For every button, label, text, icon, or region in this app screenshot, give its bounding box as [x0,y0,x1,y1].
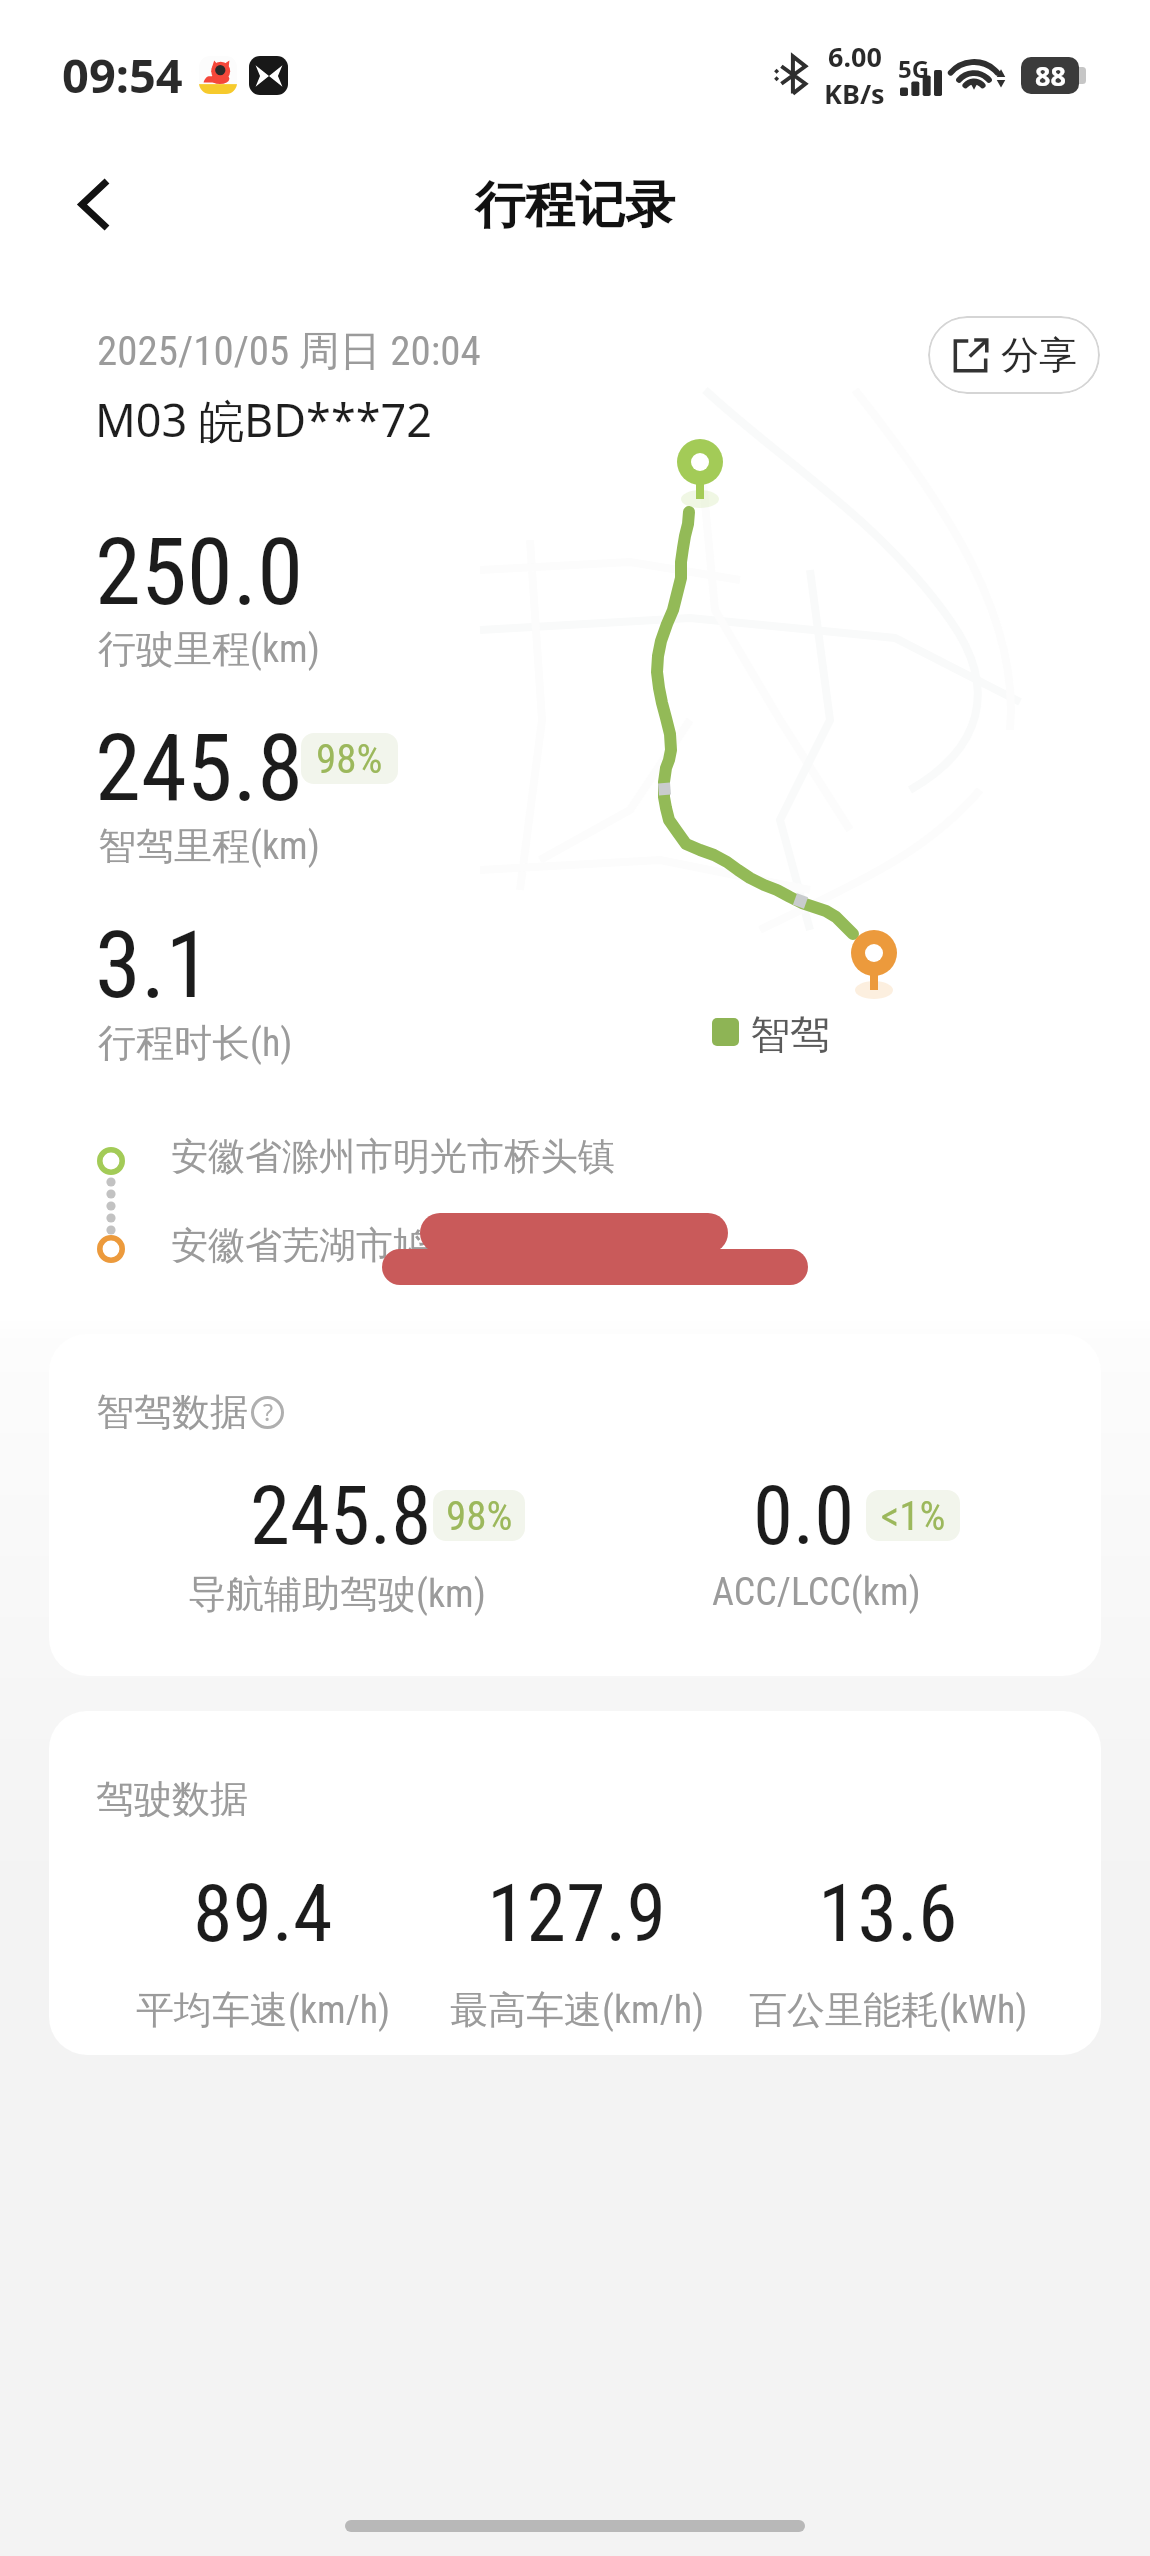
staticText: 百公里能耗(kWh) [749,1986,1028,2034]
staticText: 智驾数据 [96,1388,248,1436]
staticText: 245.8 [250,1469,432,1564]
staticText: 09:54 [62,43,183,107]
staticText: ACC/LCC(km) [712,1570,921,1615]
staticText: 250.0 [95,518,304,627]
staticText: 98% [446,1492,513,1540]
button[interactable]: 安徽省滁州市明光市桥头镇 [90,1125,650,1191]
staticText: 平均车速(km/h) [136,1986,391,2034]
staticText: <1% [881,1492,946,1540]
staticText: 分享 [1001,331,1077,379]
staticText: 智驾里程(km) [98,822,320,870]
staticText: 最高车速(km/h) [450,1986,705,2034]
button[interactable]: 智驾数据 [49,1334,1101,1676]
staticText: 3.1 [95,911,212,1020]
staticText: 2025/10/05 周日 20:04 [97,326,481,378]
staticText: 88 [1035,57,1066,94]
staticText: 智驾 [750,1009,830,1059]
button[interactable]: Back [45,155,143,253]
staticText: 127.9 [487,1867,667,1961]
button[interactable]: Help about assisted driving data [251,1396,284,1429]
staticText: ? [263,1396,273,1427]
staticText: 安徽省滁州市明光市桥头镇 [171,1133,615,1180]
staticText: 安徽省芜湖市鸠江区万达广场 [171,1222,652,1269]
button[interactable]: 安徽省芜湖市鸠江区万达广场 [90,1214,690,1280]
staticText: KB/s [824,75,885,112]
staticText: 驾驶数据 [96,1775,248,1823]
staticText: 0.0 [753,1469,855,1564]
staticText: 导航辅助驾驶(km) [188,1570,486,1618]
button[interactable]: 分享 [928,316,1100,394]
staticText: 6.00 [828,38,882,75]
staticText: 98% [316,735,383,783]
staticText: 13.6 [818,1867,958,1961]
staticText: M03 皖BD***72 [95,389,432,450]
staticText: 5G [898,52,930,85]
staticText: 行程记录 [475,174,675,237]
staticText: 89.4 [193,1867,333,1961]
staticText: 行程时长(h) [98,1019,293,1067]
button[interactable]: 驾驶数据 [49,1711,1101,2055]
staticText: 245.8 [95,714,304,823]
staticText: 行驶里程(km) [98,625,320,673]
